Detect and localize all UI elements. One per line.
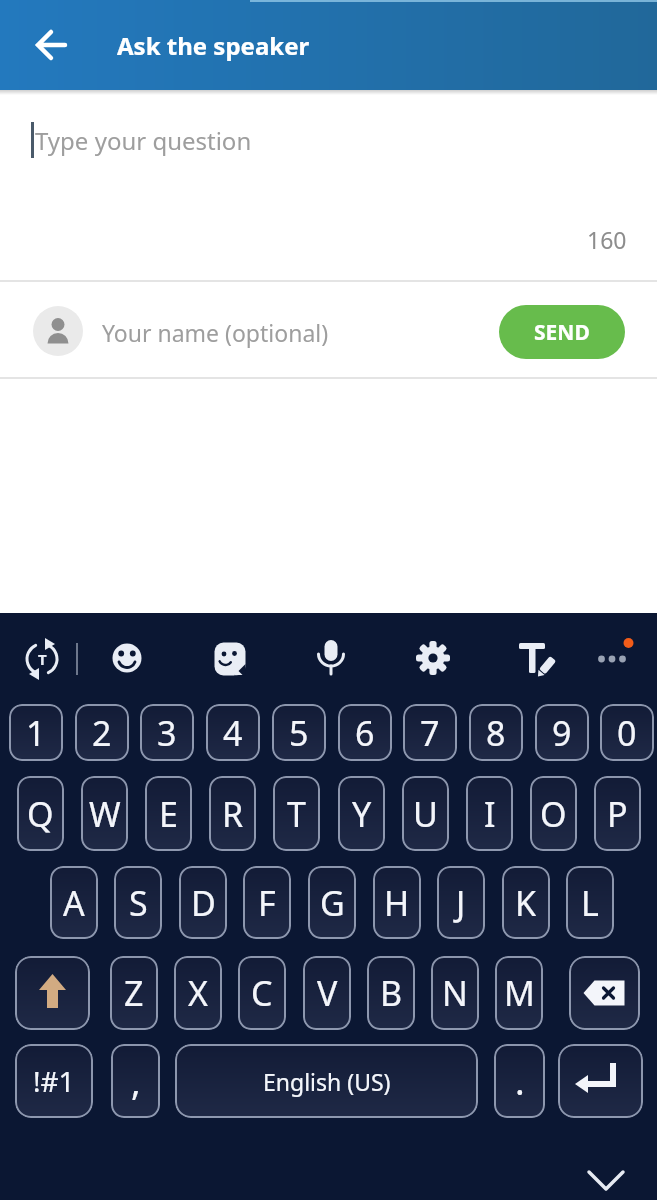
- staticText: F: [258, 880, 276, 926]
- staticText: Your name (optional): [102, 317, 329, 348]
- button[interactable]: L: [566, 866, 614, 939]
- staticText: J: [456, 880, 466, 926]
- staticText: Q: [27, 791, 54, 837]
- button[interactable]: [103, 634, 151, 682]
- button[interactable]: [409, 634, 457, 682]
- button[interactable]: V: [303, 956, 351, 1030]
- button[interactable]: H: [373, 866, 421, 939]
- staticText: SEND: [534, 318, 590, 347]
- button[interactable]: [15, 956, 90, 1030]
- button[interactable]: I: [466, 776, 513, 851]
- button[interactable]: 0: [600, 704, 654, 761]
- button[interactable]: R: [209, 776, 256, 851]
- button[interactable]: W: [81, 776, 128, 851]
- button[interactable]: Z: [110, 956, 158, 1030]
- button[interactable]: K: [502, 866, 550, 939]
- staticText: I: [484, 791, 496, 837]
- staticText: 0: [617, 710, 637, 756]
- staticText: Type your question: [35, 124, 252, 157]
- button[interactable]: [0, 282, 490, 377]
- staticText: P: [607, 791, 628, 837]
- button[interactable]: X: [174, 956, 222, 1030]
- button[interactable]: English (US): [175, 1044, 478, 1118]
- button[interactable]: [28, 21, 76, 69]
- staticText: 9: [552, 710, 572, 756]
- button[interactable]: F: [243, 866, 291, 939]
- staticText: L: [581, 880, 599, 926]
- button[interactable]: [206, 635, 254, 683]
- button[interactable]: ,: [111, 1044, 160, 1118]
- staticText: ,: [131, 1057, 141, 1106]
- staticText: 160: [587, 224, 627, 255]
- staticText: T: [287, 791, 306, 837]
- staticText: O: [540, 791, 567, 837]
- button[interactable]: !#1: [15, 1044, 93, 1118]
- button[interactable]: 9: [535, 704, 589, 761]
- staticText: S: [129, 880, 148, 926]
- staticText: .: [515, 1057, 525, 1106]
- staticText: Ask the speaker: [117, 29, 310, 62]
- staticText: 8: [486, 710, 506, 756]
- staticText: E: [159, 791, 178, 837]
- staticText: D: [191, 880, 216, 926]
- staticText: Y: [352, 791, 372, 837]
- button[interactable]: M: [495, 956, 543, 1030]
- button[interactable]: [18, 635, 66, 683]
- button[interactable]: .: [494, 1044, 545, 1118]
- staticText: T: [38, 649, 47, 669]
- button[interactable]: [569, 956, 640, 1030]
- button[interactable]: 3: [140, 704, 194, 761]
- staticText: G: [320, 880, 345, 926]
- button[interactable]: T: [273, 776, 320, 851]
- button[interactable]: 5: [272, 704, 326, 761]
- button[interactable]: 8: [469, 704, 523, 761]
- staticText: B: [380, 970, 403, 1016]
- staticText: N: [442, 970, 468, 1016]
- button[interactable]: Type your question: [0, 95, 657, 280]
- button[interactable]: U: [402, 776, 449, 851]
- button[interactable]: C: [238, 956, 286, 1030]
- staticText: 5: [289, 710, 309, 756]
- staticText: R: [222, 791, 244, 837]
- button[interactable]: [558, 1044, 643, 1118]
- staticText: 3: [157, 710, 177, 756]
- staticText: Z: [124, 970, 144, 1016]
- staticText: 1: [26, 710, 46, 756]
- staticText: V: [317, 970, 338, 1016]
- button[interactable]: [582, 1162, 630, 1200]
- staticText: U: [413, 791, 438, 837]
- staticText: K: [515, 880, 537, 926]
- button[interactable]: G: [308, 866, 356, 939]
- staticText: X: [188, 970, 208, 1016]
- button[interactable]: E: [145, 776, 192, 851]
- button[interactable]: [512, 634, 560, 682]
- staticText: !#1: [33, 1062, 75, 1100]
- button[interactable]: 4: [206, 704, 260, 761]
- staticText: English (US): [263, 1066, 391, 1097]
- button[interactable]: D: [179, 866, 227, 939]
- staticText: C: [251, 970, 273, 1016]
- button[interactable]: Y: [338, 776, 385, 851]
- button[interactable]: P: [594, 776, 641, 851]
- button[interactable]: [307, 634, 355, 682]
- button[interactable]: 7: [403, 704, 457, 761]
- staticText: 4: [223, 710, 243, 756]
- button[interactable]: J: [437, 866, 485, 939]
- button[interactable]: 2: [75, 704, 129, 761]
- button[interactable]: O: [530, 776, 577, 851]
- button[interactable]: Q: [17, 776, 64, 851]
- button[interactable]: 6: [338, 704, 392, 761]
- button[interactable]: S: [114, 866, 162, 939]
- staticText: 2: [92, 710, 112, 756]
- button[interactable]: 1: [9, 704, 63, 761]
- button[interactable]: A: [50, 866, 98, 939]
- staticText: 7: [420, 710, 440, 756]
- staticText: A: [63, 880, 85, 926]
- button[interactable]: B: [367, 956, 415, 1030]
- button[interactable]: SEND: [499, 305, 625, 359]
- button[interactable]: N: [431, 956, 479, 1030]
- staticText: 6: [355, 710, 375, 756]
- staticText: W: [89, 791, 121, 837]
- staticText: H: [384, 880, 410, 926]
- button[interactable]: [588, 635, 636, 683]
